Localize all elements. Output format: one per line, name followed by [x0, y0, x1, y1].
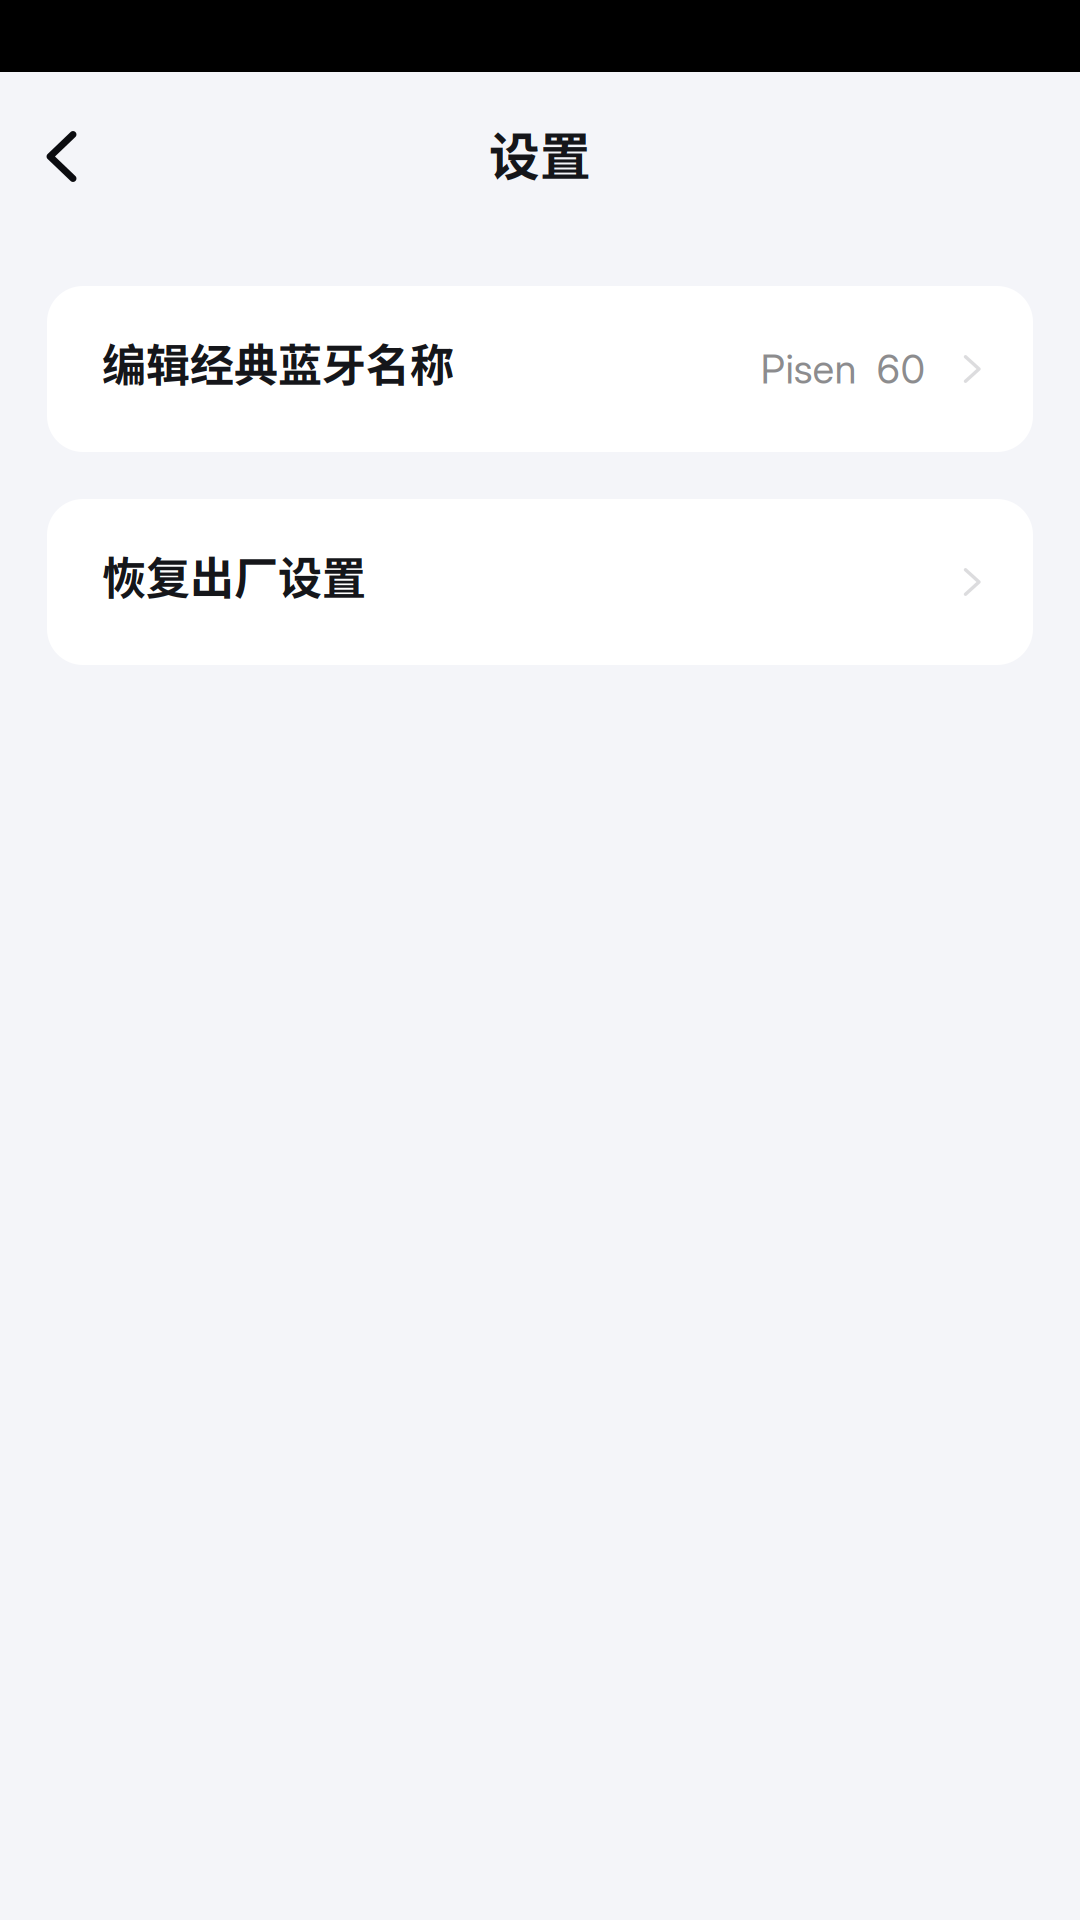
staticText: 编辑经典蓝牙名称 [102, 331, 454, 394]
button[interactable]: 恢复出厂设置 [47, 499, 1033, 665]
button[interactable]: 编辑经典蓝牙名称 [47, 286, 1033, 452]
staticText: Pisen 60 [760, 345, 925, 393]
button[interactable]: Back [0, 102, 103, 210]
staticText: 恢复出厂设置 [102, 544, 366, 607]
staticText: 设置 [489, 117, 591, 190]
